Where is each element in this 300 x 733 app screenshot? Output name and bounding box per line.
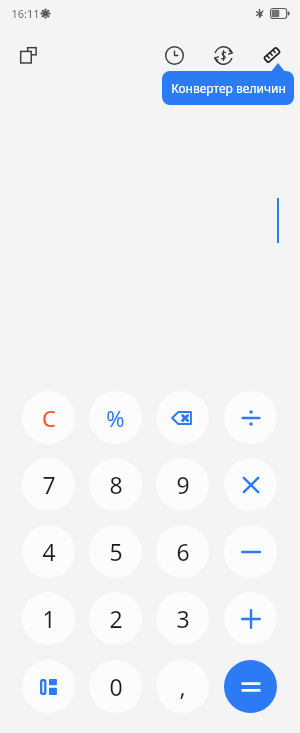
button[interactable]: 9 <box>156 458 209 511</box>
staticText: 1 <box>42 603 56 634</box>
button[interactable]: Floating window <box>10 37 46 73</box>
staticText: 2 <box>109 603 123 634</box>
staticText: 8 <box>109 469 123 500</box>
button[interactable]: , <box>156 660 209 713</box>
button[interactable]: C <box>22 391 75 444</box>
staticText: 0 <box>109 671 123 702</box>
button[interactable]: 7 <box>22 458 75 511</box>
button[interactable]: 3 <box>156 592 209 645</box>
button[interactable]: Multiply <box>224 458 277 511</box>
button[interactable]: 5 <box>89 525 142 578</box>
button[interactable]: Plus <box>224 592 277 645</box>
staticText: 7 <box>42 469 56 500</box>
button[interactable]: Switch layout <box>22 660 75 713</box>
staticText: Конвертер величин <box>171 80 286 96</box>
button[interactable]: 8 <box>89 458 142 511</box>
staticText: C <box>42 403 56 433</box>
button[interactable]: Конвертер величин <box>162 71 294 105</box>
button[interactable]: 0 <box>89 660 142 713</box>
staticText: 16:11 <box>11 6 40 21</box>
button[interactable]: Backspace <box>156 391 209 444</box>
staticText: 5 <box>109 536 123 567</box>
button[interactable]: Currency converter <box>205 37 241 73</box>
button[interactable]: Unit converter <box>254 37 290 73</box>
button[interactable]: % <box>89 391 142 444</box>
button[interactable]: History <box>156 37 192 73</box>
staticText: , <box>179 671 186 702</box>
button[interactable]: Divide <box>224 391 277 444</box>
staticText: 6 <box>176 536 190 567</box>
button[interactable]: 2 <box>89 592 142 645</box>
staticText: % <box>106 403 125 433</box>
button[interactable]: Minus <box>224 525 277 578</box>
button[interactable]: 1 <box>22 592 75 645</box>
button[interactable]: 6 <box>156 525 209 578</box>
button[interactable]: Equals <box>224 660 277 713</box>
staticText: 4 <box>42 536 56 567</box>
button[interactable]: 4 <box>22 525 75 578</box>
staticText: 9 <box>176 469 190 500</box>
staticText: 3 <box>176 603 190 634</box>
